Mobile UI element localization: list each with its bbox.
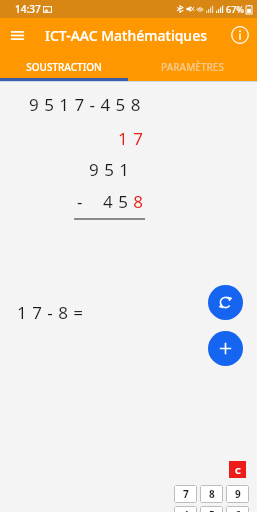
button[interactable]: 5 bbox=[200, 506, 223, 512]
button[interactable]: Recommencer bbox=[208, 285, 243, 320]
staticText: ICT-AAC Mathématiques bbox=[45, 26, 207, 45]
staticText: 9 5 1 bbox=[89, 158, 130, 181]
staticText: 4 5 8 bbox=[103, 190, 144, 213]
staticText: 6 bbox=[235, 508, 241, 512]
button[interactable]: SOUSTRACTION bbox=[0, 52, 128, 81]
button[interactable]: 4 bbox=[174, 506, 197, 512]
staticText: 9 bbox=[235, 487, 241, 501]
button[interactable]: Menu bbox=[0, 18, 34, 52]
staticText: C bbox=[235, 464, 241, 476]
staticText: 1 7 bbox=[118, 127, 144, 150]
staticText: 14:37 bbox=[15, 2, 41, 16]
button[interactable]: C bbox=[229, 461, 246, 478]
staticText: 4 bbox=[183, 508, 189, 512]
button[interactable]: 8 bbox=[200, 485, 223, 503]
button[interactable]: 6 bbox=[226, 506, 249, 512]
staticText: 9 5 1 7 - 4 5 8 bbox=[29, 93, 141, 116]
staticText: PARAMÈTRES bbox=[161, 60, 224, 74]
staticText: SOUSTRACTION bbox=[26, 60, 102, 74]
staticText: 1 7 - 8 = bbox=[17, 301, 84, 324]
button[interactable]: Nouveau calcul bbox=[208, 331, 243, 366]
staticText: 67% bbox=[226, 3, 244, 15]
button[interactable]: Information bbox=[223, 18, 257, 52]
staticText: 7 bbox=[183, 487, 189, 501]
button[interactable]: PARAMÈTRES bbox=[128, 52, 257, 81]
staticText: - bbox=[77, 190, 83, 213]
button[interactable]: 7 bbox=[174, 485, 197, 503]
staticText: 5 bbox=[209, 508, 215, 512]
button[interactable]: 9 bbox=[226, 485, 249, 503]
staticText: 8 bbox=[209, 487, 215, 501]
